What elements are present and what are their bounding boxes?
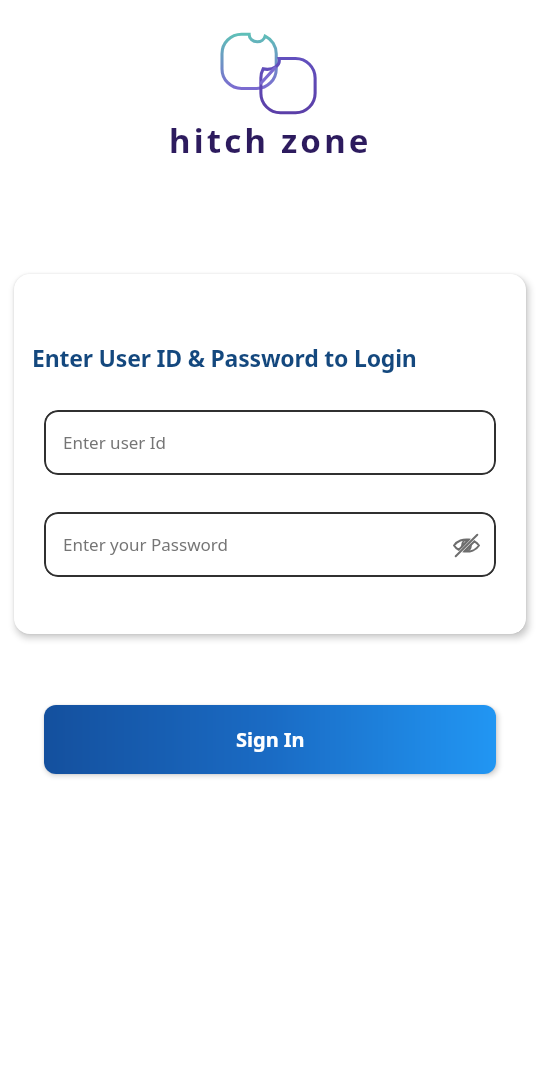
staticText: hitch zone (169, 118, 372, 163)
staticText: Enter User ID & Password to Login (32, 342, 417, 373)
button[interactable]: Enter your Password (44, 512, 496, 577)
button[interactable]: Show password (444, 523, 488, 567)
staticText: Sign In (236, 726, 305, 753)
button[interactable]: Sign In (44, 705, 496, 774)
button[interactable]: Enter user Id (44, 410, 496, 475)
staticText: Enter your Password (63, 533, 228, 556)
staticText: Enter user Id (63, 431, 167, 454)
other: hitch zone logo (222, 30, 318, 106)
